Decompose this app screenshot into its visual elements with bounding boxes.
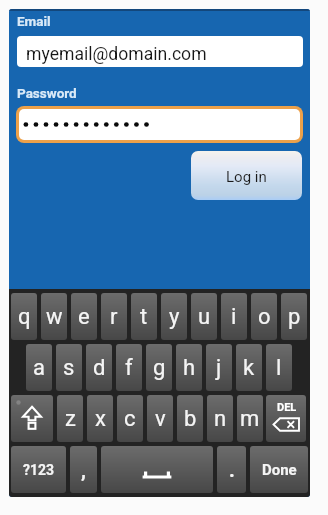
staticText: Email [17,13,51,29]
button[interactable]: h [176,344,202,391]
button[interactable]: Done [250,446,308,493]
button[interactable]: f [116,344,142,391]
staticText: t [140,304,148,330]
staticText: x [95,406,106,432]
staticText: a [33,355,45,381]
staticText: . [229,458,235,481]
button[interactable]: l [266,344,292,391]
button[interactable]: , [70,446,97,493]
button[interactable]: k [236,344,262,391]
button[interactable]: v [147,395,173,442]
button[interactable]: m [237,395,263,442]
button[interactable]: n [207,395,233,442]
staticText: ?123 [23,462,55,478]
staticText: k [243,355,255,381]
staticText: n [214,406,227,432]
button[interactable]: u [191,293,217,340]
staticText: f [125,355,133,381]
button[interactable]: z [57,395,83,442]
staticText: Password [17,85,77,101]
staticText: e [78,304,90,330]
button[interactable]: Shift [11,395,53,442]
staticText: g [153,355,166,381]
staticText: h [183,355,196,381]
staticText: w [46,304,63,330]
button[interactable]: j [206,344,232,391]
staticText: b [184,406,197,432]
staticText: p [288,304,301,330]
staticText: d [93,355,106,381]
button[interactable]: Space [101,446,213,493]
button[interactable] [19,109,300,140]
staticText: c [124,406,136,432]
button[interactable]: r [101,293,127,340]
staticText: v [155,406,166,432]
button[interactable]: t [131,293,157,340]
staticText: , [81,458,86,481]
staticText: Log in [226,168,267,186]
button[interactable]: . [217,446,246,493]
staticText: z [65,406,76,432]
staticText: myemail@domain.com [26,44,207,65]
button[interactable]: e [71,293,97,340]
button[interactable]: a [26,344,52,391]
staticText: j [216,355,222,381]
staticText: i [231,304,237,330]
staticText: l [276,355,282,381]
button[interactable]: Delete [266,395,306,442]
button[interactable]: x [87,395,113,442]
staticText: u [198,304,211,330]
staticText: q [18,304,31,330]
button[interactable]: c [117,395,143,442]
staticText: y [169,304,180,330]
button[interactable]: myemail@domain.com [17,36,303,67]
staticText: s [63,355,75,381]
button[interactable]: Log in [191,151,302,200]
button[interactable]: w [41,293,67,340]
staticText: m [240,406,260,432]
button[interactable]: o [251,293,277,340]
staticText: r [110,304,118,330]
button[interactable]: b [177,395,203,442]
button[interactable]: d [86,344,112,391]
button[interactable]: ?123 [11,446,66,493]
button[interactable]: y [161,293,187,340]
button[interactable]: s [56,344,82,391]
button[interactable]: q [11,293,37,340]
button[interactable]: g [146,344,172,391]
staticText: o [258,304,271,330]
staticText: Done [262,461,297,479]
staticText: DEL [277,401,297,414]
button[interactable]: i [221,293,247,340]
button[interactable]: p [281,293,307,340]
